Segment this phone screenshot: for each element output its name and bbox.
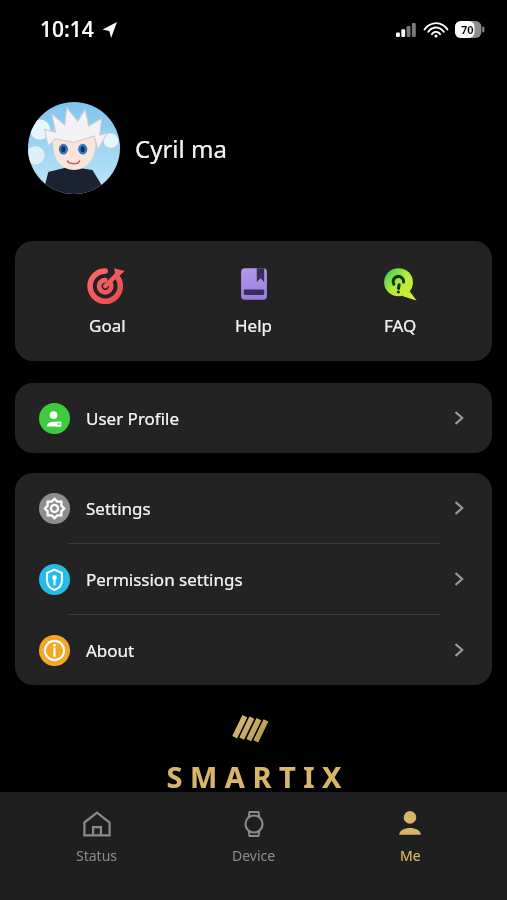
button[interactable]: Status bbox=[37, 806, 157, 867]
staticText: S M A R T I X bbox=[166, 757, 342, 796]
button[interactable]: Me bbox=[350, 806, 470, 867]
button[interactable]: User Profile bbox=[15, 383, 492, 453]
button[interactable]: Goal bbox=[52, 261, 162, 341]
button[interactable]: Help bbox=[199, 261, 309, 341]
staticText: Cyril ma bbox=[135, 132, 227, 165]
staticText: 70 bbox=[461, 22, 474, 37]
button[interactable]: Device bbox=[194, 806, 314, 867]
staticText: User Profile bbox=[86, 407, 180, 430]
staticText: Goal bbox=[89, 314, 126, 337]
staticText: Permission settings bbox=[86, 568, 243, 591]
button[interactable] bbox=[28, 102, 120, 194]
staticText: Help bbox=[235, 314, 273, 337]
button[interactable]: About bbox=[15, 615, 492, 685]
button[interactable]: Settings bbox=[15, 473, 492, 543]
staticText: Me bbox=[400, 846, 421, 865]
staticText: Device bbox=[232, 846, 276, 865]
button[interactable]: FAQ bbox=[345, 261, 455, 341]
staticText: Status bbox=[76, 846, 118, 865]
staticText: Settings bbox=[86, 497, 151, 520]
staticText: About bbox=[86, 639, 135, 662]
staticText: 10:14 bbox=[40, 15, 94, 44]
button[interactable]: Permission settings bbox=[15, 544, 492, 614]
staticText: FAQ bbox=[384, 314, 417, 337]
